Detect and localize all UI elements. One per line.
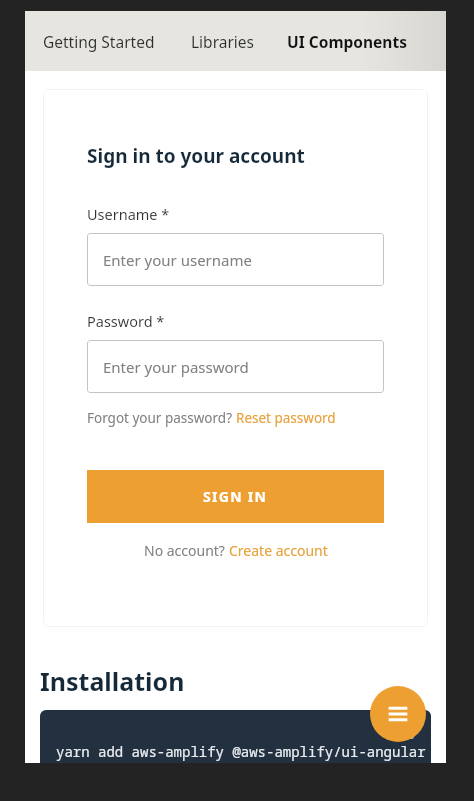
button[interactable]: UI Components: [285, 23, 409, 60]
staticText: Enter your password: [103, 357, 249, 377]
staticText: Copy: [386, 722, 417, 740]
staticText: Getting Started: [43, 31, 155, 52]
button[interactable]: Libraries: [189, 23, 257, 60]
staticText: SIGN IN: [203, 487, 268, 506]
staticText: Reset password: [236, 409, 336, 427]
staticText: Username *: [87, 204, 170, 224]
button[interactable]: Create account: [229, 541, 328, 560]
staticText: Password *: [87, 311, 165, 331]
button[interactable]: SIGN IN: [87, 470, 384, 523]
staticText: Libraries: [191, 31, 255, 52]
button[interactable]: Reset password: [236, 409, 336, 427]
button[interactable]: Enter your password: [87, 340, 384, 393]
staticText: Forgot your password?: [87, 409, 236, 427]
button[interactable]: Getting Started: [41, 23, 157, 60]
staticText: UI Components: [287, 31, 407, 52]
button[interactable]: Enter your username: [87, 233, 384, 286]
staticText: Enter your username: [103, 250, 252, 270]
staticText: Sign in to your account: [87, 143, 305, 169]
staticText: No account?: [144, 541, 229, 560]
button[interactable]: Open menu: [370, 686, 426, 742]
staticText: yarn add aws-amplify @aws-amplify/ui-ang…: [56, 742, 426, 761]
staticText: Installation: [40, 664, 185, 698]
staticText: Create account: [229, 541, 328, 560]
